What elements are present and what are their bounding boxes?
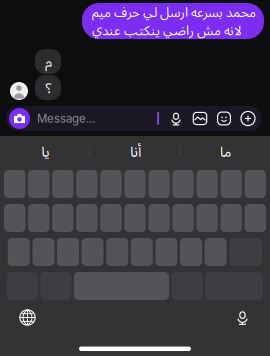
button[interactable]: Change keyboard	[19, 309, 36, 326]
button[interactable]: Stickers	[216, 110, 232, 126]
button[interactable]: Voice message	[168, 110, 184, 126]
button[interactable]: ما	[180, 137, 270, 165]
button[interactable]: Photos	[192, 110, 208, 126]
button[interactable]: Camera	[9, 108, 30, 129]
staticText: محمد بسرعه ارسل لي حرف ميم لانه مش راضي …	[92, 3, 256, 39]
staticText: ؟	[45, 77, 51, 97]
button[interactable]: يا	[0, 137, 89, 165]
staticText: يا	[41, 141, 49, 161]
button[interactable]: Dictate	[234, 309, 251, 326]
button[interactable]: More	[240, 110, 256, 126]
staticText: ما	[219, 141, 231, 161]
staticText: Message...	[37, 112, 95, 125]
staticText: م	[44, 51, 51, 71]
button[interactable]: أنا	[90, 137, 180, 165]
staticText: أنا	[129, 141, 140, 161]
